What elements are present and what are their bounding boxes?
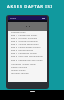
staticText: Daftar bbox=[10, 17, 17, 20]
button[interactable]: Bab 2 Struktur Program bbox=[8, 37, 47, 40]
staticText: Bab 5 Perancangan Sistem bbox=[11, 46, 41, 49]
button[interactable]: Bab 5 Perancangan Sistem bbox=[8, 46, 47, 49]
staticText: Bab 8 Hasil dan Pembahasan bbox=[11, 55, 43, 58]
button[interactable]: AKSES DAFTAR ISI bbox=[0, 0, 64, 14]
staticText: AKSES DAFTAR ISI bbox=[7, 4, 53, 10]
staticText: Pendahuluan bbox=[11, 31, 26, 34]
button[interactable]: Bab 4 Analisa Kebutuhan bbox=[8, 43, 47, 46]
staticText: Lampiran Daftar Tabel bbox=[11, 63, 36, 66]
button[interactable]: Daftar Pustaka bbox=[8, 66, 47, 69]
staticText: Bab 2 Struktur Program bbox=[11, 37, 38, 40]
button[interactable]: Indeks Istilah bbox=[8, 69, 47, 72]
staticText: Bab 1 Pengertian Dasar bbox=[11, 34, 38, 37]
staticText: Indeks Istilah bbox=[11, 69, 26, 72]
button[interactable]: Bab 6 Implementasi bbox=[8, 49, 47, 52]
button[interactable]: Bab 1 Pengertian Dasar bbox=[8, 34, 47, 37]
staticText: Daftar Pustaka bbox=[11, 66, 27, 69]
staticText: Bab 4 Analisa Kebutuhan bbox=[11, 43, 39, 46]
staticText: Bab 7 Pengujian Sistem bbox=[11, 52, 37, 55]
button[interactable]: Pendahuluan bbox=[8, 31, 47, 34]
staticText: Bab 3 Metode Penelitian bbox=[11, 40, 38, 43]
button[interactable]: Bab 7 Pengujian Sistem bbox=[8, 52, 47, 55]
button[interactable]: Bab 3 Metode Penelitian bbox=[8, 40, 47, 43]
button[interactable]: Lampiran Daftar Tabel bbox=[8, 63, 47, 66]
button[interactable]: Bab 9 Kesimpulan dan Saran bbox=[8, 58, 47, 63]
staticText: Bab 9 Kesimpulan dan Saran bbox=[11, 59, 43, 62]
button[interactable]: Bab 8 Hasil dan Pembahasan bbox=[8, 55, 47, 58]
button[interactable]: Tentang Aplikasi bbox=[8, 72, 47, 75]
staticText: Tentang Aplikasi bbox=[11, 72, 29, 75]
staticText: Bab 6 Implementasi bbox=[11, 49, 34, 52]
